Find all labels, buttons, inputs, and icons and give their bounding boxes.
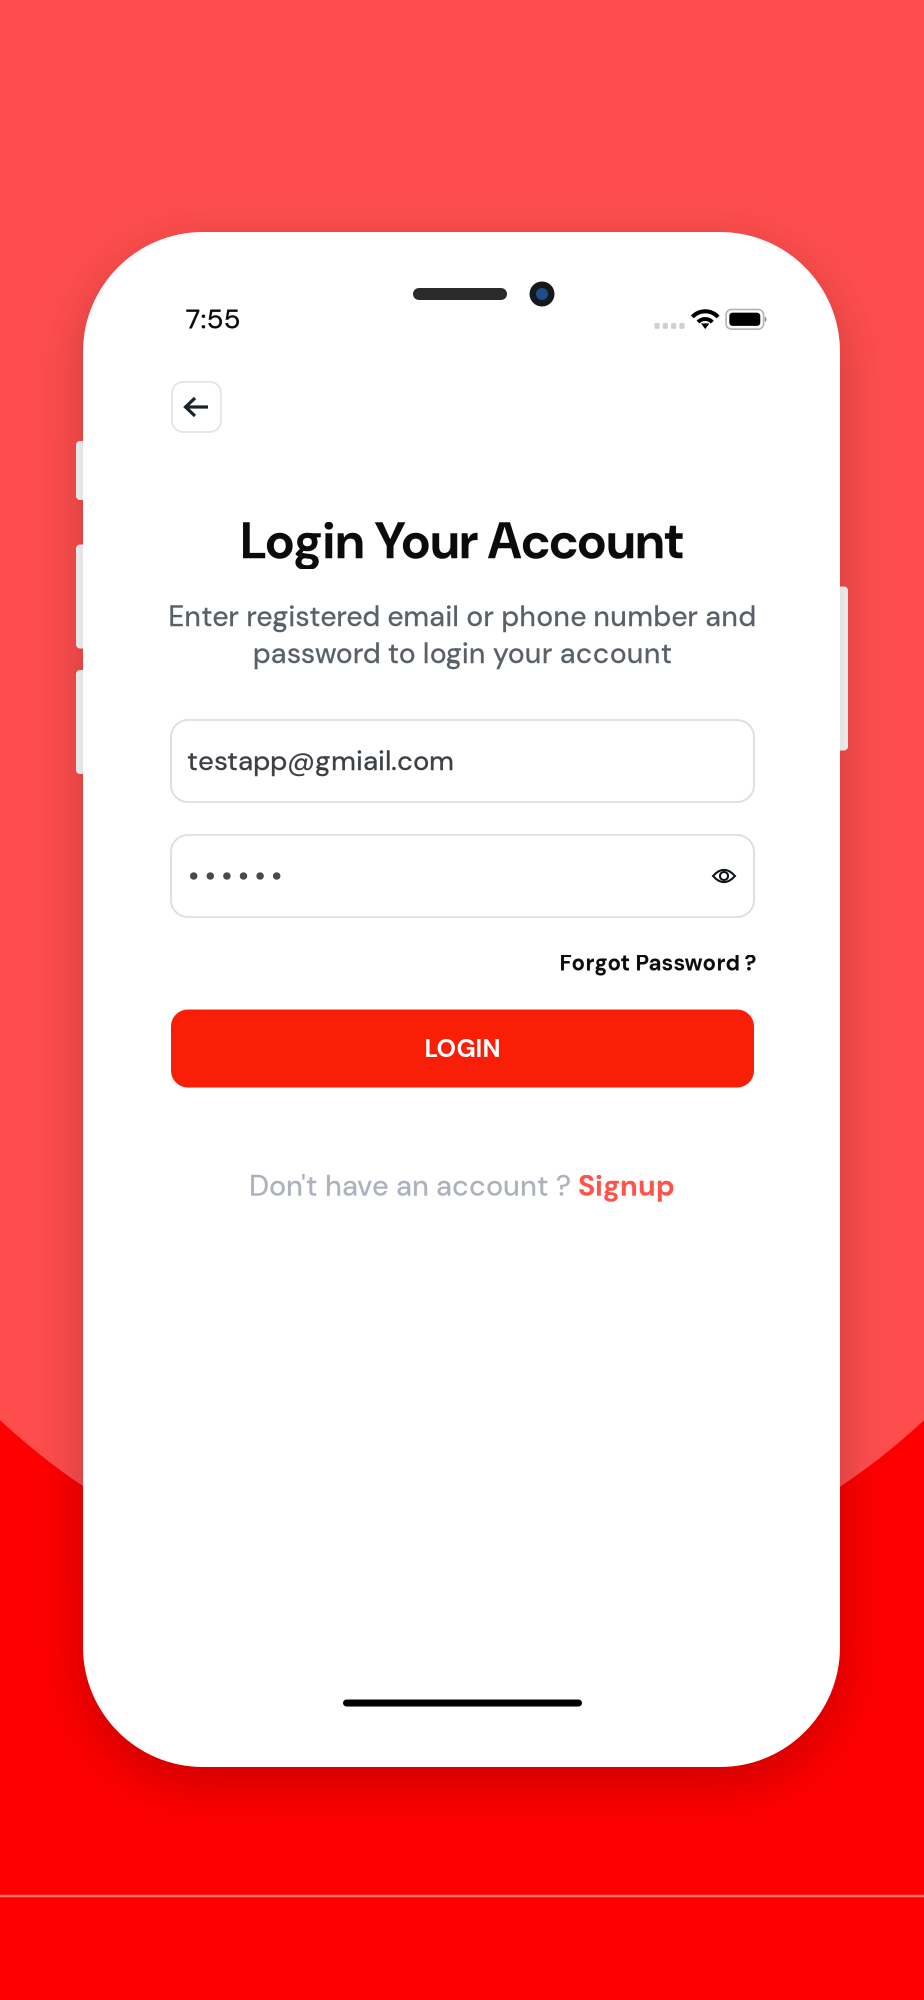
button[interactable]: Show password (712, 868, 736, 884)
staticText: Forgot Password ? (559, 949, 756, 977)
staticText: Login Your Account (240, 508, 683, 574)
button[interactable]: Back (172, 382, 221, 432)
button[interactable]: Don't have an account ? (249, 1167, 675, 1205)
staticText: testapp@gmiail.com (187, 743, 454, 779)
staticText: 7:55 (185, 301, 240, 337)
staticText: Enter registered email or phone number a… (168, 598, 756, 672)
staticText: Signup (578, 1167, 675, 1205)
staticText: LOGIN (424, 1032, 500, 1065)
staticText: Don't have an account ? (249, 1167, 578, 1205)
button[interactable]: Forgot Password ? (559, 949, 756, 977)
button[interactable]: LOGIN (171, 1009, 754, 1087)
